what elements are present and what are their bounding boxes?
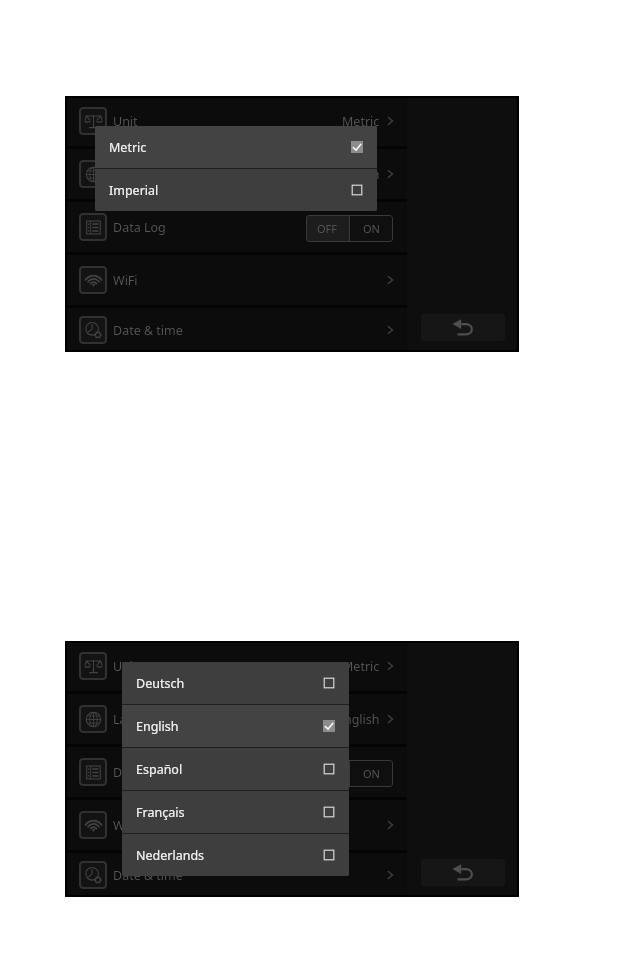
staticText: Metric: [342, 658, 380, 675]
staticText: ON: [363, 766, 380, 781]
staticText: Metric: [342, 113, 380, 130]
staticText: Français: [136, 804, 185, 821]
button[interactable]: OFF: [306, 760, 393, 787]
staticText: English: [136, 718, 179, 735]
staticText: WiFi: [113, 272, 138, 289]
staticText: Date & time: [113, 322, 183, 339]
staticText: Unit: [113, 658, 138, 675]
staticText: Unit: [113, 113, 138, 130]
staticText: Language: [113, 166, 172, 183]
button[interactable]: Nederlands: [122, 834, 349, 876]
staticText: English: [337, 711, 380, 728]
button[interactable]: Back: [421, 859, 505, 886]
button[interactable]: Date & time: [65, 308, 407, 352]
staticText: Metric: [109, 139, 147, 156]
button[interactable]: OFF: [306, 215, 393, 242]
button[interactable]: English: [122, 705, 349, 747]
staticText: WiFi: [113, 817, 138, 834]
button[interactable]: Imperial: [95, 169, 377, 211]
staticText: Language: [113, 711, 172, 728]
button[interactable]: Data Log: [65, 202, 407, 252]
button[interactable]: Metric: [95, 126, 377, 168]
staticText: English: [337, 166, 380, 183]
button[interactable]: WiFi: [65, 255, 407, 305]
staticText: OFF: [317, 766, 338, 781]
staticText: Date & time: [113, 867, 183, 884]
button[interactable]: Unit: [65, 641, 407, 691]
button[interactable]: Back: [421, 314, 505, 341]
button[interactable]: Language: [65, 694, 407, 744]
staticText: Imperial: [109, 182, 159, 199]
button[interactable]: Language: [65, 149, 407, 199]
staticText: OFF: [317, 221, 338, 236]
button[interactable]: Date & time: [65, 853, 407, 897]
button[interactable]: Español: [122, 748, 349, 790]
button[interactable]: Unit: [65, 96, 407, 146]
staticText: Data Log: [113, 219, 166, 236]
staticText: Deutsch: [136, 675, 185, 692]
staticText: Español: [136, 761, 183, 778]
button[interactable]: Data Log: [65, 747, 407, 797]
button[interactable]: Français: [122, 791, 349, 833]
staticText: Data Log: [113, 764, 166, 781]
button[interactable]: Deutsch: [122, 662, 349, 704]
staticText: ON: [363, 221, 380, 236]
button[interactable]: WiFi: [65, 800, 407, 850]
staticText: Nederlands: [136, 847, 205, 864]
